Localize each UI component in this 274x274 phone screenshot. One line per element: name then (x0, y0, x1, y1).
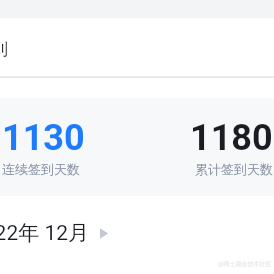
staticText: 签到 (0, 39, 8, 60)
staticText: 连续签到天数 (2, 161, 80, 177)
staticText: @稀土掘金技术社区 (218, 260, 272, 268)
staticText: 累计签到天数 (195, 161, 273, 177)
other: Next month (98, 228, 109, 239)
staticText: 1180 (190, 117, 273, 159)
staticText: 2022年 12月 (0, 220, 90, 246)
button[interactable]: 2022年 12月 (0, 196, 274, 270)
staticText: 1130 (2, 117, 85, 159)
